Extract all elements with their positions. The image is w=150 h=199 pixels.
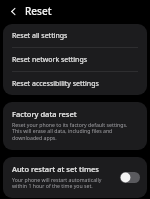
staticText: Reset accessibility settings [12,79,99,89]
staticText: Reset all settings [12,31,68,41]
staticText: Your phone will restart automatically wi… [12,176,115,190]
button[interactable]: Reset network settings [3,48,147,71]
button[interactable]: Reset all settings [3,24,147,47]
button[interactable]: Reset accessibility settings [3,72,147,95]
staticText: Auto restart at set times [12,164,99,174]
staticText: Reset network settings [12,55,88,65]
button[interactable]: Auto restart at set times [3,157,147,198]
staticText: Reset your phone to its factory default … [12,121,138,142]
button[interactable]: Factory data reset [3,102,147,150]
staticText: Reset [25,4,52,18]
button[interactable]: Auto restart at set times toggle [120,172,140,183]
button[interactable]: Back [5,3,21,19]
staticText: Factory data reset [12,109,77,119]
